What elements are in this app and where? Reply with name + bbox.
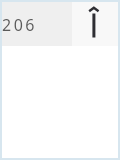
button[interactable]: 206: [2, 2, 72, 46]
button[interactable]: Scroll to top: [72, 2, 118, 46]
staticText: 206: [2, 14, 37, 36]
